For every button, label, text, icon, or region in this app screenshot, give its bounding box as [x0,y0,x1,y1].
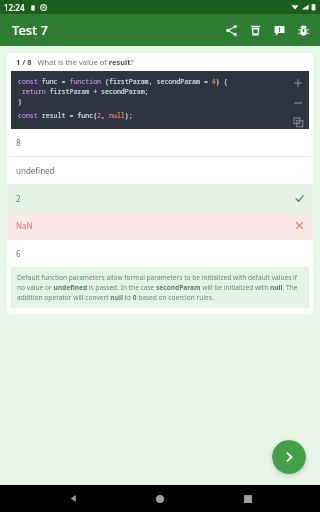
button[interactable]: 8 [7,129,313,156]
button[interactable]: Share [219,18,243,42]
button[interactable]: Back [58,485,88,512]
button[interactable]: Copy code [291,116,305,129]
staticText: const func = function (firstParam, secon… [18,77,228,86]
button[interactable]: Next question [272,440,306,474]
button[interactable]: Delete [243,18,267,42]
button[interactable]: NaN [7,212,313,239]
staticText: Default function parameters allow formal… [17,273,303,302]
button[interactable]: undefined [7,157,313,184]
staticText: return firstParam + secondParam; [18,87,149,96]
button[interactable]: Recent apps [233,485,263,512]
staticText: } [18,97,22,106]
button[interactable]: Home [145,485,175,512]
staticText: 6 [16,248,21,259]
staticText: 2 [16,193,21,204]
staticText: 8 [16,137,21,148]
button[interactable]: Decrease font size [291,96,305,110]
staticText: Test 7 [12,21,48,39]
staticText: 12:24 [4,2,25,13]
button[interactable]: 6 [7,240,313,267]
staticText: 1 / 8 What is the value of result? [16,57,134,67]
staticText: undefined [16,165,55,176]
button[interactable]: 2 [7,185,313,212]
staticText: const result = func(2, null); [18,111,133,120]
staticText: NaN [16,220,33,231]
button[interactable]: Report bug [291,18,315,42]
button[interactable]: Increase font size [291,76,305,90]
button[interactable]: Notes [267,18,291,42]
